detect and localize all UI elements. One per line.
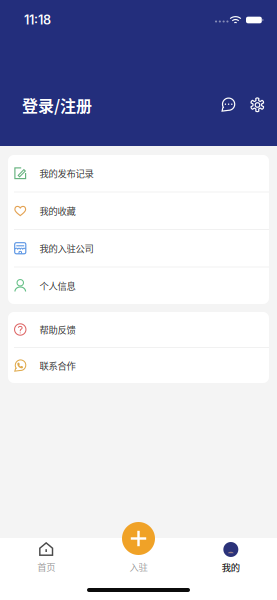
staticText: 我的收藏: [39, 204, 75, 217]
staticText: 联系合作: [39, 359, 75, 372]
button[interactable]: 我的发布记录: [8, 155, 269, 191]
staticText: 登录/注册: [22, 93, 92, 117]
staticText: 我的发布记录: [39, 166, 93, 180]
button[interactable]: 我的入驻公司: [8, 230, 269, 266]
staticText: 入驻: [129, 560, 147, 573]
button[interactable]: 设置: [245, 93, 269, 117]
button[interactable]: 消息: [216, 93, 240, 117]
staticText: 11:18: [24, 12, 51, 28]
button[interactable]: 入驻: [92, 538, 185, 584]
button[interactable]: 个人信息: [8, 267, 269, 304]
button[interactable]: 首页: [0, 538, 92, 584]
staticText: 我的: [222, 560, 240, 574]
button[interactable]: 我的收藏: [8, 192, 269, 229]
button[interactable]: 入驻: [122, 522, 155, 555]
button[interactable]: 我的: [185, 538, 277, 584]
staticText: 我的入驻公司: [39, 241, 93, 255]
button[interactable]: 帮助反馈: [8, 312, 269, 347]
button[interactable]: 联系合作: [8, 348, 269, 383]
staticText: 首页: [37, 560, 55, 573]
staticText: 帮助反馈: [39, 323, 75, 336]
staticText: 个人信息: [39, 279, 75, 292]
